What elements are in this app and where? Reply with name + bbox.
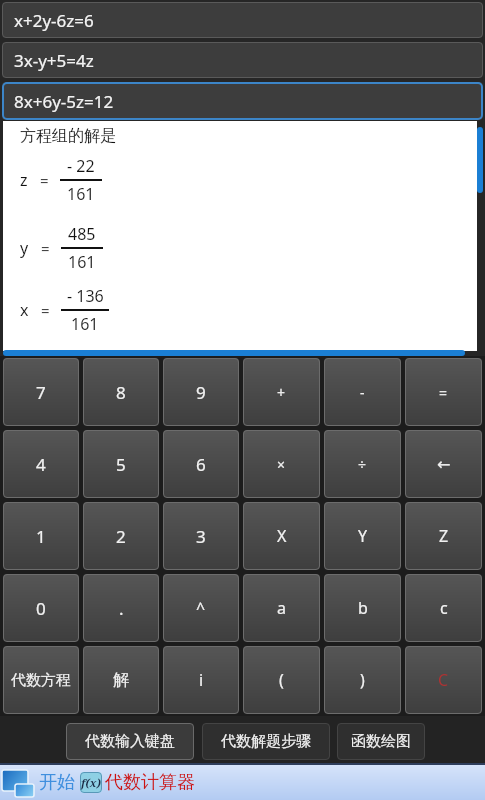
staticText: 3x-y+5=4z [14,49,94,72]
staticText: 方程组的解是 [20,126,116,146]
staticText: = [41,238,50,258]
staticText: . [119,597,124,620]
staticText: 4 [36,453,46,476]
button[interactable]: X [243,502,320,570]
button[interactable]: 代数方程 [3,646,79,714]
staticText: ) [360,669,365,691]
button[interactable]: 8x+6y-5z=12 [2,82,483,120]
staticText: b [358,597,368,619]
button[interactable]: f(x) [80,772,102,793]
button[interactable]: 6 [163,430,239,498]
button[interactable]: ← [405,430,482,498]
button[interactable]: 3x-y+5=4z [2,42,483,78]
button[interactable]: ^ [163,574,239,642]
button[interactable]: 1 [3,502,79,570]
staticText: = [40,170,49,190]
button[interactable]: 解 [83,646,159,714]
button[interactable]: 代数解题步骤 [202,723,330,760]
staticText: - [360,383,365,402]
staticText: 161 [67,183,95,205]
staticText: C [438,669,449,691]
button[interactable]: = [405,358,482,426]
staticText: x [20,299,29,321]
button[interactable]: ( [243,646,320,714]
staticText: 161 [71,313,99,335]
button[interactable] [2,768,35,798]
button[interactable]: - [324,358,401,426]
staticText: × [277,455,286,474]
button[interactable]: 代数输入键盘 [66,723,194,760]
button[interactable]: 5 [83,430,159,498]
button[interactable]: a [243,574,320,642]
staticText: X [277,525,287,547]
staticText: c [440,597,448,619]
staticText: 485 [68,223,96,245]
button[interactable]: 2 [83,502,159,570]
staticText: ← [437,455,451,474]
staticText: 9 [196,381,206,404]
staticText: 函数绘图 [351,732,411,751]
button[interactable]: 4 [3,430,79,498]
staticText: 3 [196,525,206,548]
staticText: = [439,383,448,402]
staticText: 代数方程 [11,671,71,690]
staticText: ÷ [358,455,367,474]
button[interactable]: + [243,358,320,426]
staticText: - 22 [67,155,95,177]
staticText: 代数解题步骤 [221,732,311,751]
staticText: 8 [116,381,126,404]
staticText: z [20,169,28,191]
button[interactable]: ÷ [324,430,401,498]
button[interactable]: b [324,574,401,642]
staticText: 5 [116,453,126,476]
button[interactable]: i [163,646,239,714]
staticText: 2 [116,525,126,548]
staticText: y [20,237,29,259]
button[interactable]: c [405,574,482,642]
staticText: ( [279,669,284,691]
staticText: 6 [196,453,206,476]
staticText: = [41,300,50,320]
button[interactable]: ) [324,646,401,714]
staticText: a [277,597,286,619]
staticText: 代数输入键盘 [85,732,175,751]
staticText: ^ [196,597,206,619]
button[interactable]: Z [405,502,482,570]
button[interactable]: 函数绘图 [337,723,425,760]
button[interactable]: × [243,430,320,498]
staticText: 8x+6y-5z=12 [14,90,114,113]
button[interactable]: 代数计算器 [105,771,195,794]
staticText: 0 [36,597,46,620]
staticText: Z [439,525,449,547]
button[interactable]: . [83,574,159,642]
button[interactable]: x+2y-6z=6 [2,2,483,38]
button[interactable]: 8 [83,358,159,426]
button[interactable]: C [405,646,482,714]
staticText: i [199,669,204,691]
button[interactable]: 3 [163,502,239,570]
staticText: 1 [36,525,46,548]
staticText: Y [358,525,368,547]
staticText: 解 [113,670,129,690]
staticText: 7 [36,381,46,404]
staticText: x+2y-6z=6 [14,9,94,32]
button[interactable]: 开始 [39,771,75,794]
staticText: + [277,383,286,402]
button[interactable]: 9 [163,358,239,426]
staticText: 161 [68,251,96,273]
button[interactable]: 7 [3,358,79,426]
button[interactable]: 0 [3,574,79,642]
staticText: - 136 [67,285,104,307]
button[interactable]: Y [324,502,401,570]
staticText: f(x) [81,775,101,790]
